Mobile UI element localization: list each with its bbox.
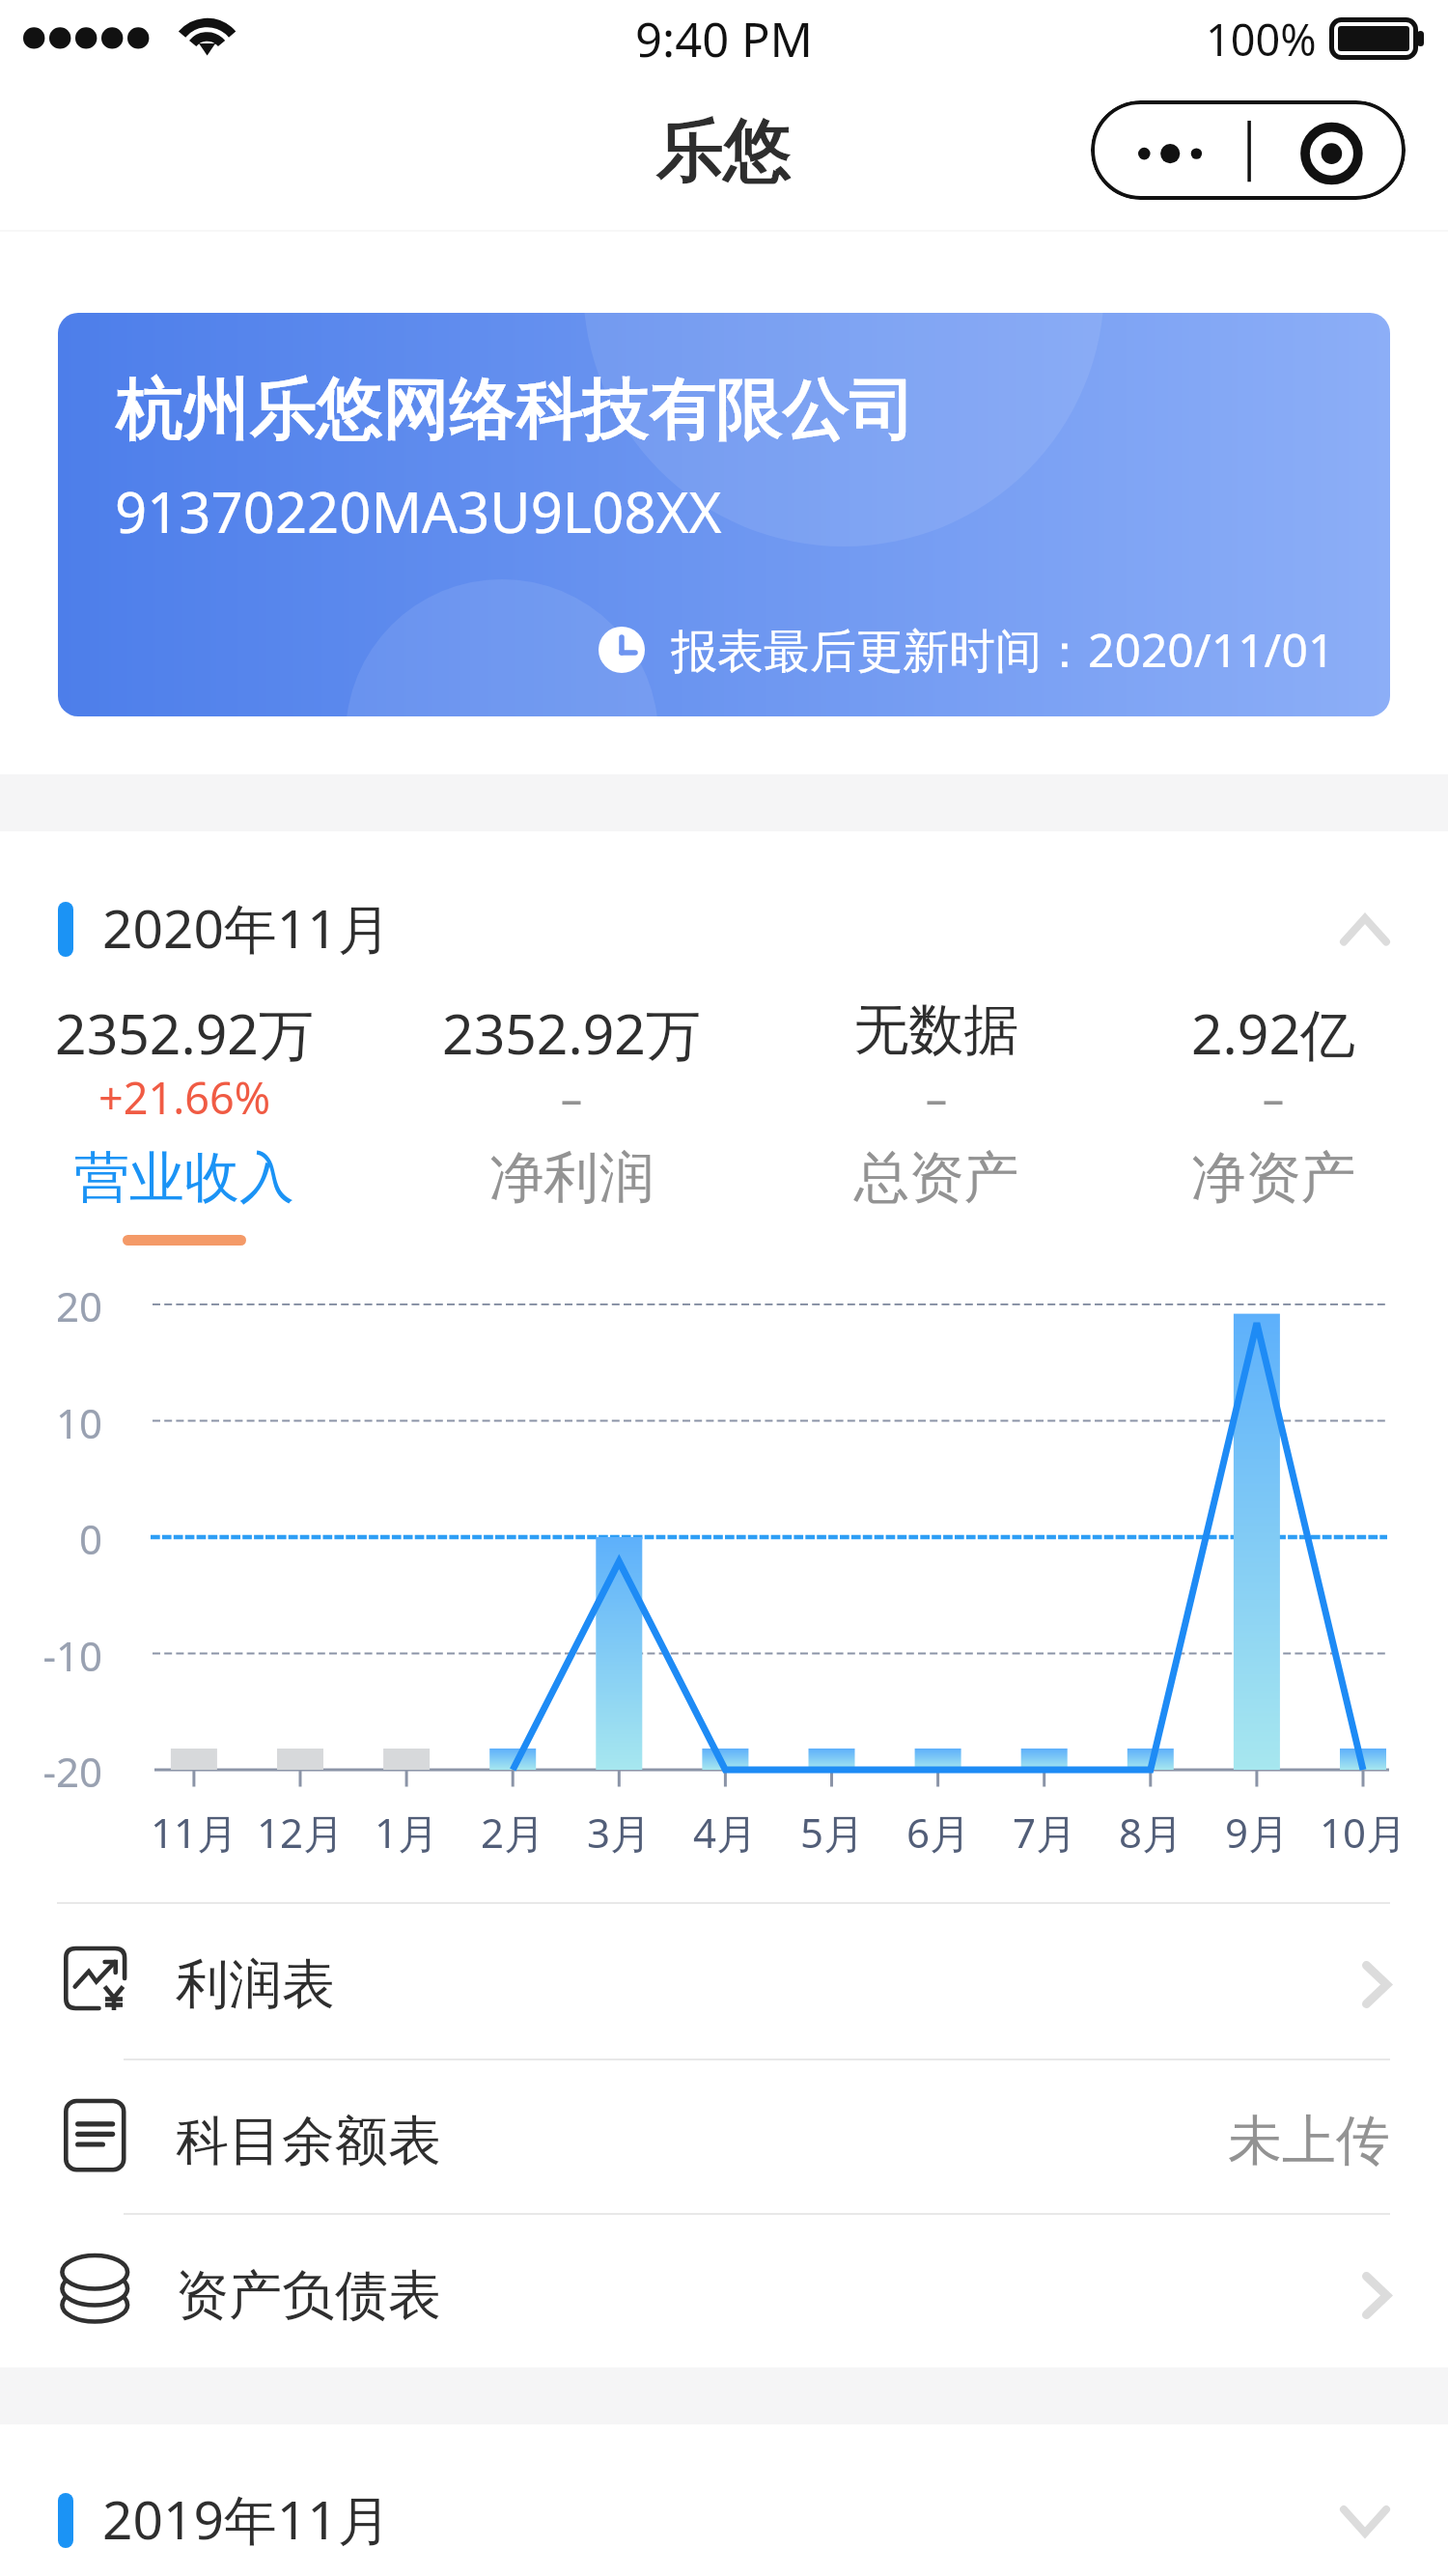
staticText: 净资产	[1090, 1143, 1448, 1213]
staticText: 10月	[1305, 1805, 1421, 1860]
staticText: 杭州乐悠网络科技有限公司	[117, 368, 916, 452]
staticText: 5月	[774, 1805, 890, 1860]
button[interactable]: More options and close mini program	[1091, 100, 1406, 200]
staticText: –	[1090, 1068, 1448, 1127]
staticText: 2.92亿	[1090, 995, 1448, 1071]
staticText: 报表最后更新时间：2020/11/01	[671, 618, 1335, 682]
staticText: 2352.92万	[388, 995, 755, 1071]
button[interactable]: 科目余额表	[0, 2058, 1448, 2213]
staticText: –	[753, 1068, 1120, 1127]
staticText: 科目余额表	[176, 2108, 441, 2174]
staticText: 2352.92万	[1, 995, 368, 1071]
staticText: 未上传	[0, 2107, 1390, 2175]
staticText: 乐悠	[656, 109, 792, 194]
staticText: 1月	[348, 1805, 464, 1860]
staticText: 100%	[1206, 10, 1317, 69]
staticText: 营业收入	[1, 1143, 368, 1213]
staticText: 无数据	[753, 995, 1120, 1065]
staticText: 2020年11月	[102, 891, 391, 964]
staticText: +21.66%	[1, 1068, 368, 1127]
staticText: 4月	[667, 1805, 783, 1860]
button[interactable]: 2352.92万	[1, 985, 368, 1265]
staticText: -10	[0, 1628, 102, 1683]
staticText: –	[388, 1068, 755, 1127]
staticText: 净利润	[388, 1143, 755, 1213]
staticText: -20	[0, 1744, 102, 1799]
staticText: 11月	[136, 1805, 252, 1860]
staticText: 3月	[561, 1805, 677, 1860]
button[interactable]: 2019年11月	[0, 2468, 1448, 2574]
staticText: 0	[0, 1511, 102, 1566]
staticText: 7月	[987, 1805, 1102, 1860]
staticText: 9:40 PM	[635, 7, 814, 71]
staticText: 2月	[455, 1805, 571, 1860]
button[interactable]: 杭州乐悠网络科技有限公司	[58, 313, 1390, 716]
button[interactable]: 2352.92万	[388, 985, 755, 1265]
staticText: 9月	[1199, 1805, 1315, 1860]
staticText: 8月	[1093, 1805, 1209, 1860]
staticText: 2019年11月	[102, 2482, 391, 2555]
staticText: 利润表	[176, 1951, 335, 2018]
button[interactable]: 2020年11月	[0, 877, 1448, 983]
button[interactable]: 2.92亿	[1090, 985, 1448, 1265]
button[interactable]: 利润表	[0, 1902, 1448, 2057]
staticText: 91370220MA3U9L08XX	[115, 473, 722, 549]
staticText: 乐悠	[656, 109, 792, 194]
button[interactable]: 资产负债表	[0, 2213, 1448, 2367]
staticText: 杭州乐悠网络科技有限公司	[117, 368, 916, 452]
staticText: 6月	[880, 1805, 996, 1860]
staticText: 总资产	[753, 1143, 1120, 1213]
staticText: 12月	[242, 1805, 358, 1860]
staticText: 10	[0, 1395, 102, 1450]
staticText: 20	[0, 1278, 102, 1333]
button[interactable]: 无数据	[753, 985, 1120, 1265]
staticText: 资产负债表	[176, 2262, 441, 2329]
